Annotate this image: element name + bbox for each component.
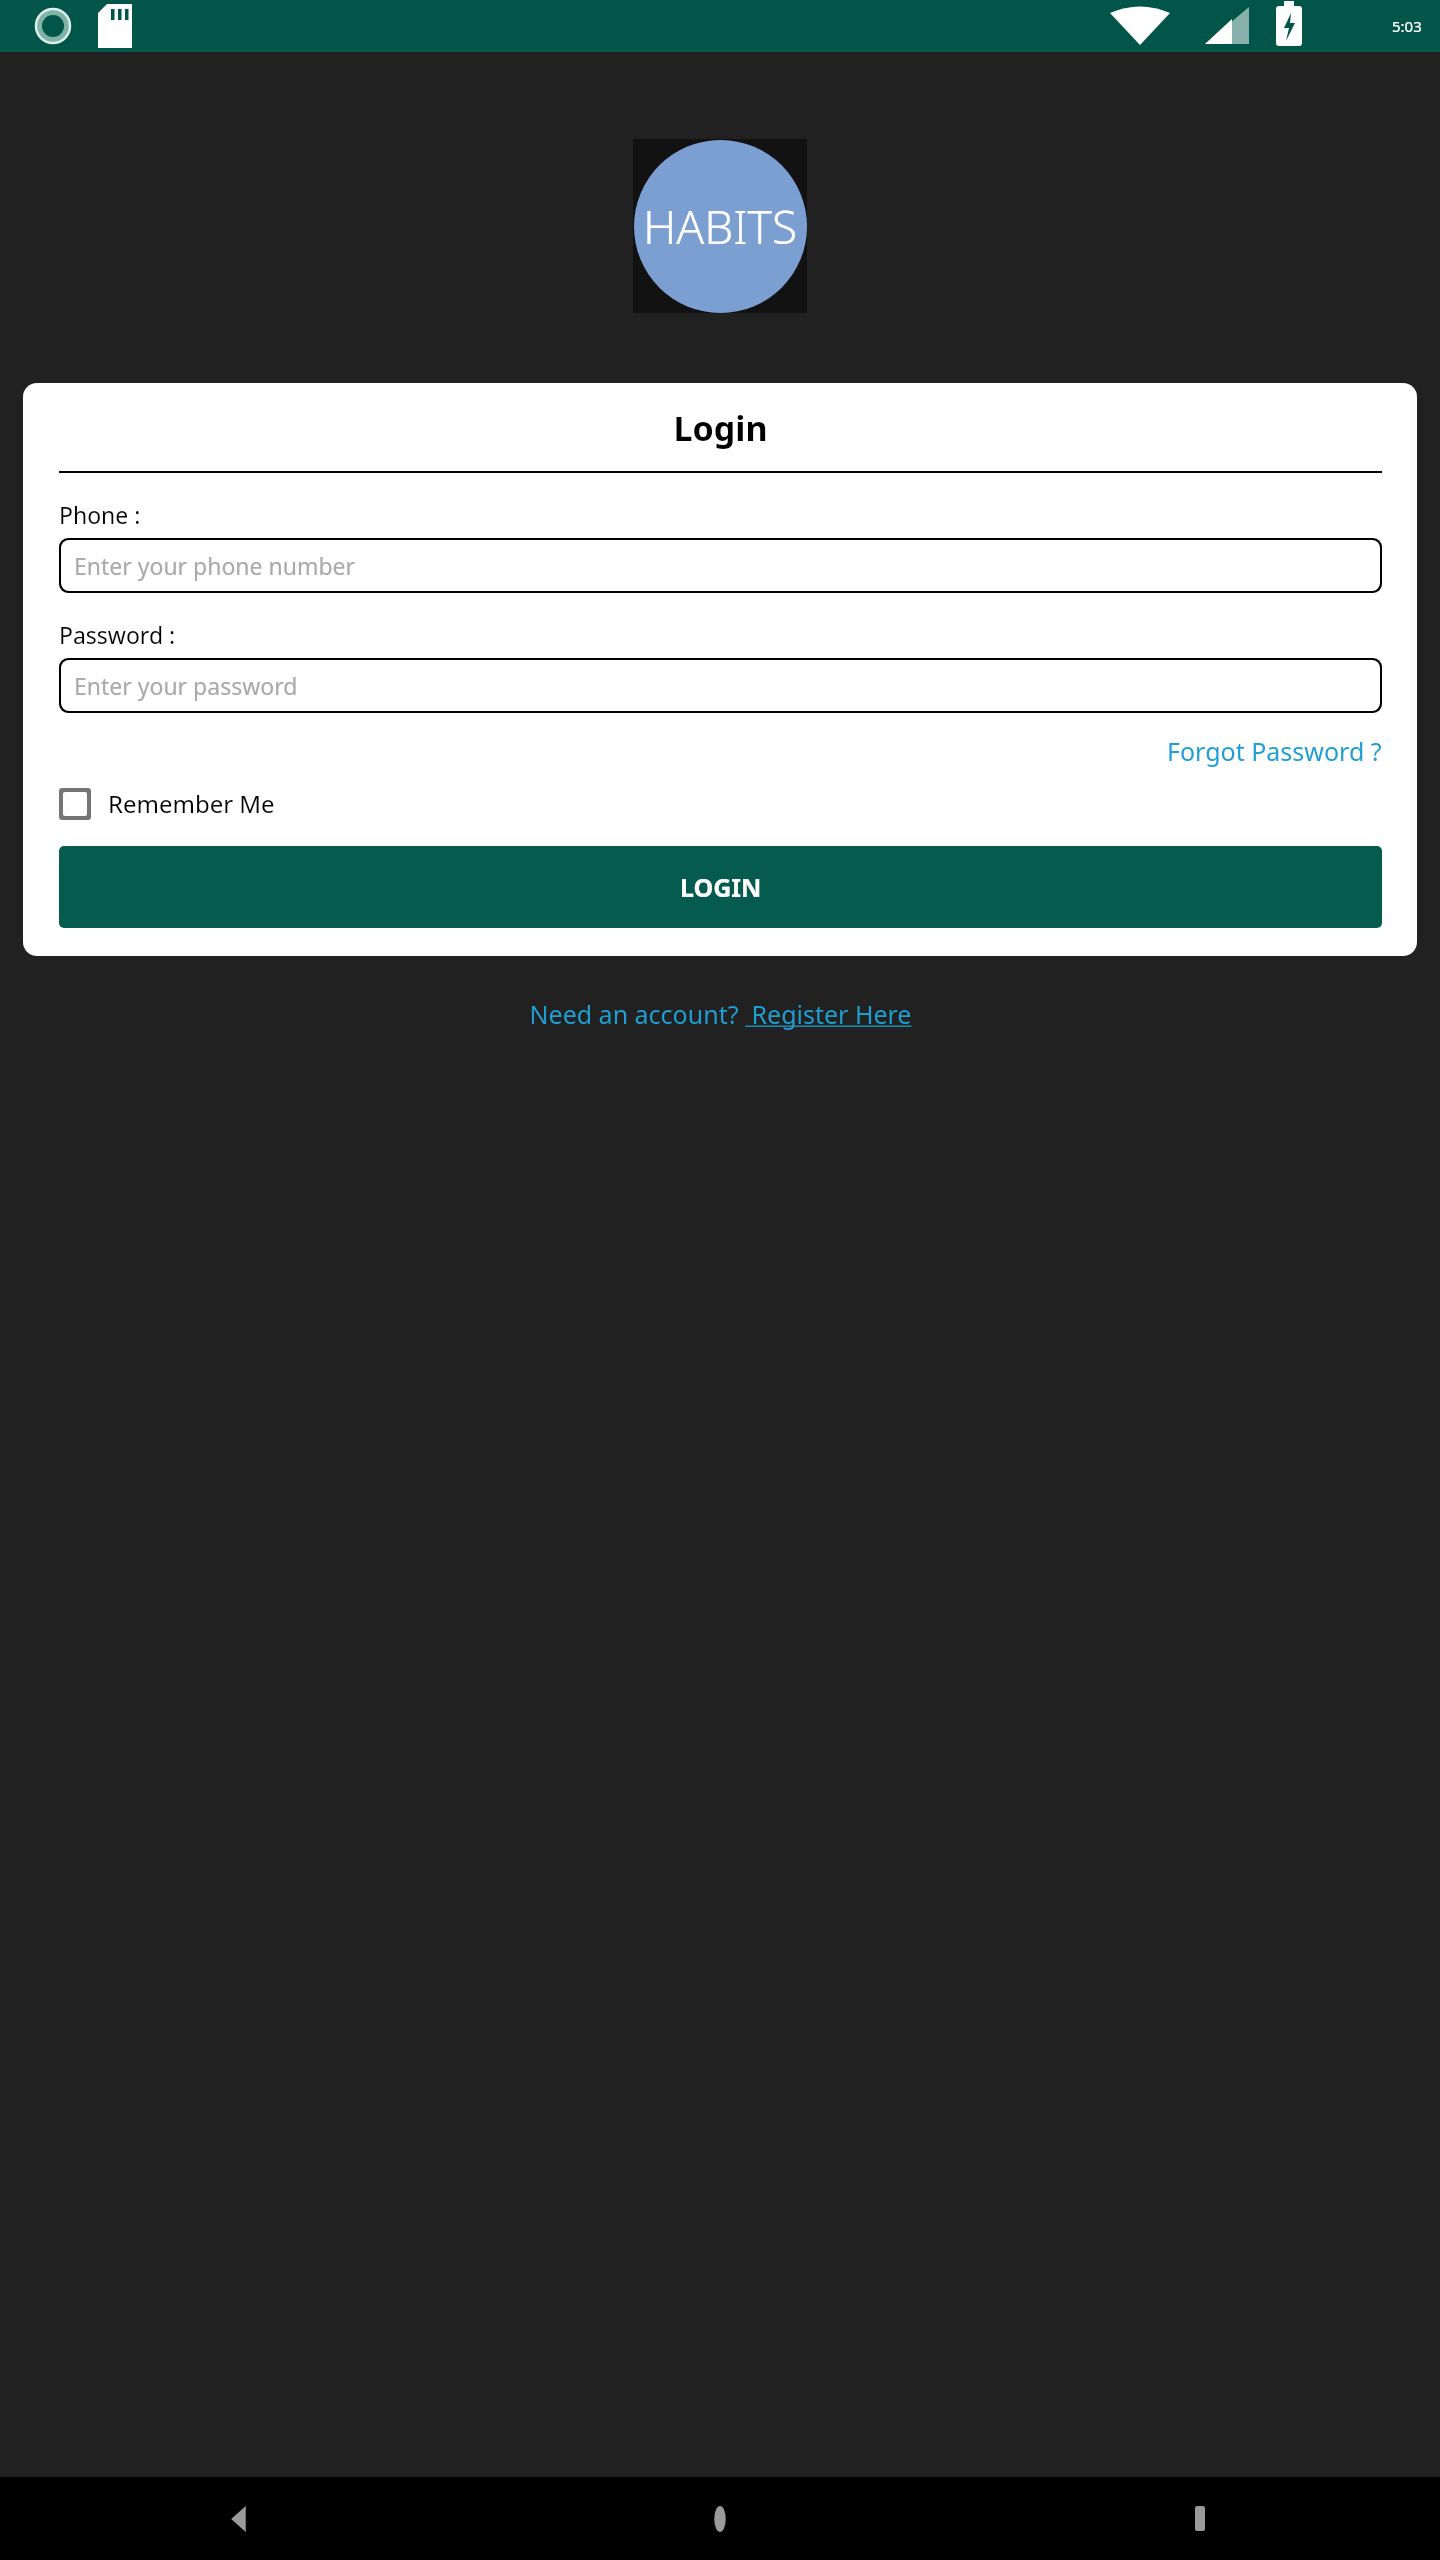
button[interactable]: Enter your password bbox=[61, 660, 1380, 711]
staticText: Remember Me bbox=[108, 787, 275, 820]
button[interactable]: Home bbox=[480, 2477, 960, 2560]
staticText: Enter your phone number bbox=[74, 550, 356, 581]
button[interactable]: Recent apps bbox=[960, 2477, 1440, 2560]
button[interactable]: Enter your phone number bbox=[61, 540, 1380, 591]
staticText: Password : bbox=[59, 619, 176, 650]
button[interactable]: Need an account? Register Here bbox=[526, 992, 915, 1036]
staticText: Login bbox=[59, 405, 1382, 451]
staticText: 5:03 bbox=[1392, 16, 1422, 36]
staticText: Phone : bbox=[59, 499, 141, 530]
staticText: LOGIN bbox=[680, 870, 762, 904]
button[interactable]: Forgot Password ? bbox=[1167, 731, 1382, 771]
button[interactable]: Remember Me bbox=[59, 783, 275, 824]
staticText: Enter your password bbox=[74, 670, 298, 701]
button[interactable]: Back bbox=[0, 2477, 480, 2560]
staticText: HABITS bbox=[643, 195, 798, 258]
button[interactable]: LOGIN bbox=[59, 846, 1382, 928]
